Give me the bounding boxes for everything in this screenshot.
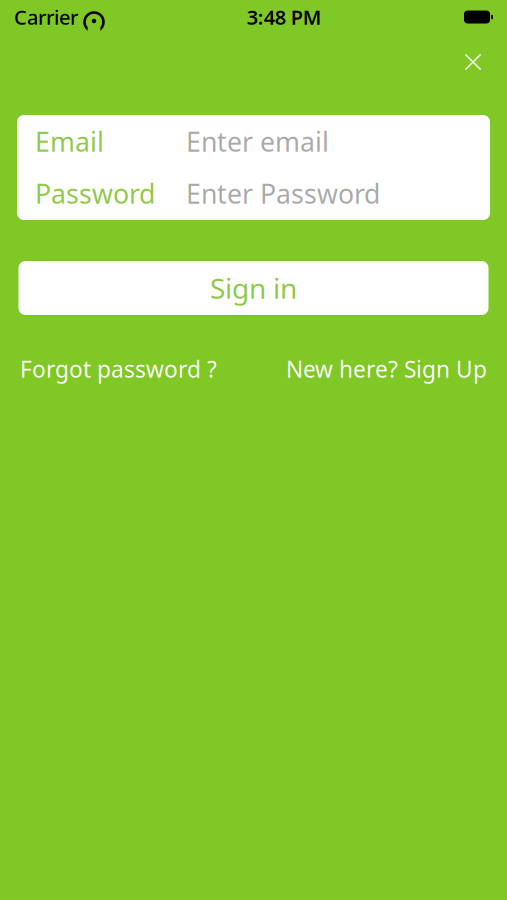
- staticText: Forgot password ?: [20, 354, 217, 384]
- button[interactable]: Sign in: [18, 261, 488, 315]
- button[interactable]: New here? Sign Up: [286, 354, 487, 384]
- staticText: 3:48 PM: [247, 4, 322, 30]
- staticText: Email: [35, 124, 104, 159]
- staticText: Enter email: [186, 124, 329, 159]
- staticText: Carrier: [14, 4, 78, 30]
- button[interactable]: Close: [453, 42, 493, 82]
- staticText: Password: [35, 176, 155, 211]
- staticText: Enter Password: [186, 176, 380, 211]
- staticText: Sign in: [210, 269, 297, 307]
- button[interactable]: Forgot password ?: [20, 354, 217, 384]
- staticText: New here? Sign Up: [286, 354, 487, 384]
